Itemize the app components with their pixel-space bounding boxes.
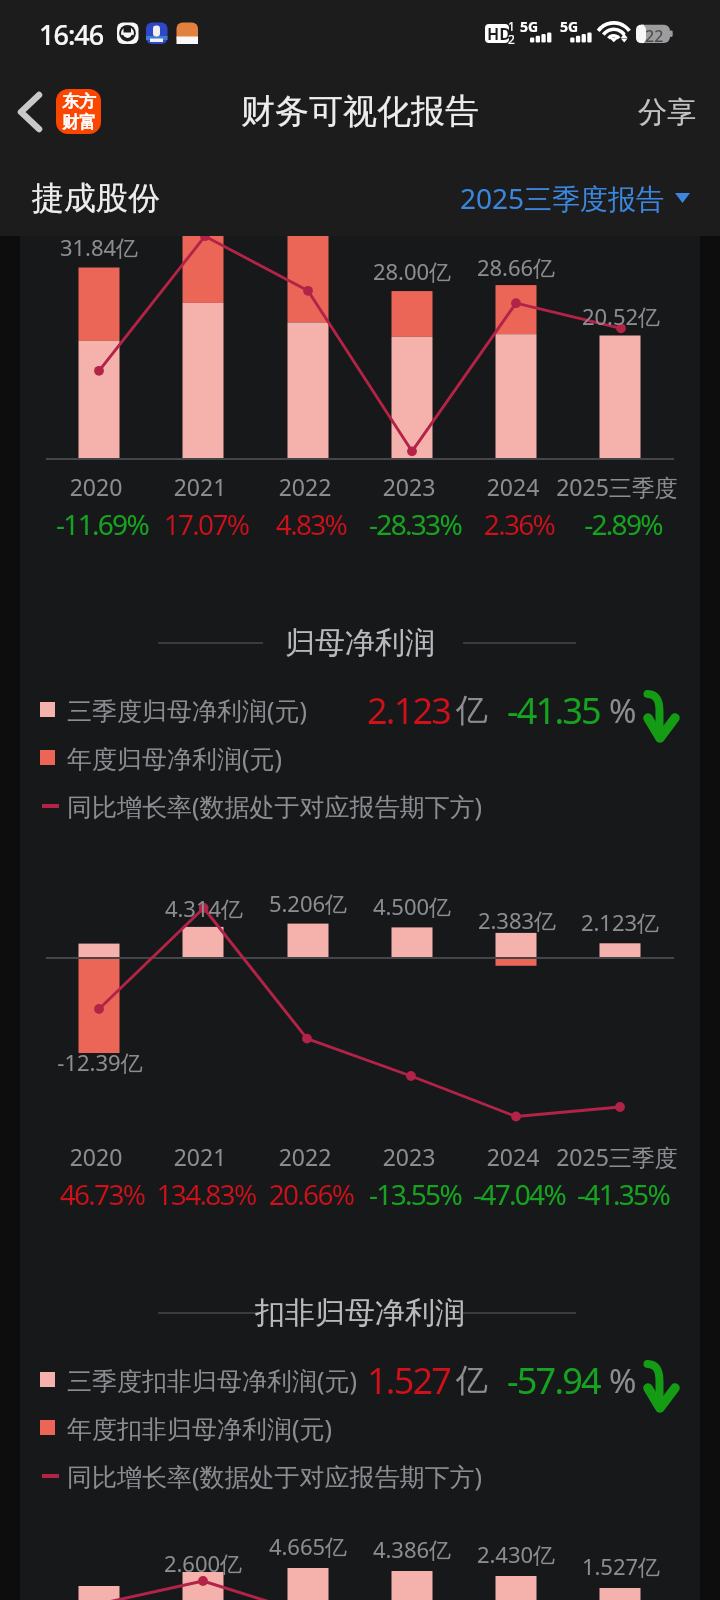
staticText: 2	[508, 31, 515, 47]
staticText: %	[609, 1358, 637, 1403]
staticText: 20.66%	[151, 1175, 471, 1213]
button[interactable]: 2025三季度报告	[460, 179, 690, 217]
staticText: 46.73%	[0, 1175, 262, 1213]
staticText: 亿	[456, 1360, 488, 1400]
staticText: 4.386亿	[252, 1534, 572, 1564]
staticText: 年度扣非归母净利润(元)	[67, 1411, 333, 1445]
staticText: 2.383亿	[357, 905, 677, 935]
staticText: 2022	[145, 471, 465, 502]
staticText: 2025三季度	[457, 471, 720, 502]
button[interactable]: East Money home	[56, 89, 101, 134]
staticText: 2.123	[367, 686, 451, 735]
staticText: 同比增长率(数据处于对应报告期下方)	[67, 789, 483, 823]
staticText: 同比增长率(数据处于对应报告期下方)	[67, 1459, 483, 1493]
staticText: -13.55%	[255, 1175, 575, 1213]
staticText: 17.07%	[46, 505, 366, 543]
staticText: 4.500亿	[252, 891, 572, 921]
staticText: 三季度扣非归母净利润(元)	[67, 1363, 358, 1397]
staticText: 2023	[249, 1141, 569, 1172]
staticText: 捷成股份	[32, 178, 160, 218]
staticText: 亿	[456, 690, 488, 730]
staticText: 4.83%	[151, 505, 471, 543]
staticText: 5.206亿	[148, 888, 468, 918]
staticText: 东方	[62, 91, 96, 112]
staticText: 归母净利润	[0, 624, 720, 662]
staticText: -2.89%	[463, 505, 720, 543]
staticText: -11.69%	[0, 505, 262, 543]
staticText: 2021	[40, 1141, 360, 1172]
staticText: 2020	[0, 471, 256, 502]
staticText: 扣非归母净利润	[0, 1294, 720, 1332]
staticText: -12.39亿	[0, 1047, 260, 1077]
staticText: 2023	[249, 471, 569, 502]
staticText: 2.600亿	[43, 1548, 363, 1578]
staticText: 年度归母净利润(元)	[67, 741, 283, 775]
staticText: 28.66亿	[356, 252, 676, 282]
staticText: 16:46	[39, 16, 104, 53]
staticText: -57.94	[507, 1356, 600, 1405]
staticText: 2024	[353, 1141, 673, 1172]
staticText: 1	[508, 18, 515, 34]
staticText: 2.123亿	[460, 907, 720, 937]
staticText: 5G	[520, 17, 539, 36]
staticText: 1.527亿	[461, 1551, 720, 1581]
staticText: 20.52亿	[461, 301, 720, 331]
staticText: 1.527	[367, 1356, 451, 1405]
button[interactable]: Back	[0, 64, 54, 160]
staticText: 31.84亿	[0, 232, 259, 262]
staticText: 三季度归母净利润(元)	[67, 693, 308, 727]
staticText: 4.314亿	[44, 893, 364, 923]
staticText: 财务可视化报告	[241, 90, 479, 133]
staticText: -47.04%	[359, 1175, 679, 1213]
staticText: HD	[487, 23, 511, 45]
staticText: 134.83%	[46, 1175, 366, 1213]
staticText: 2025三季度报告	[460, 179, 665, 217]
staticText: 4.665亿	[148, 1531, 468, 1561]
staticText: 财富	[62, 112, 96, 133]
staticText: 2024	[353, 471, 673, 502]
staticText: 5G	[560, 17, 579, 36]
staticText: %	[609, 688, 637, 733]
staticText: -41.35	[507, 686, 600, 735]
staticText: 2.430亿	[356, 1539, 676, 1569]
staticText: 2.36%	[359, 505, 679, 543]
staticText: 2022	[145, 1141, 465, 1172]
staticText: 2021	[40, 471, 360, 502]
staticText: -41.35%	[463, 1175, 720, 1213]
staticText: 22	[645, 25, 664, 47]
staticText: 2020	[0, 1141, 256, 1172]
staticText: 2025三季度	[457, 1141, 720, 1172]
staticText: 28.00亿	[252, 256, 572, 286]
staticText: 分享	[638, 94, 696, 131]
button[interactable]: 分享	[638, 64, 696, 160]
staticText: -28.33%	[255, 505, 575, 543]
